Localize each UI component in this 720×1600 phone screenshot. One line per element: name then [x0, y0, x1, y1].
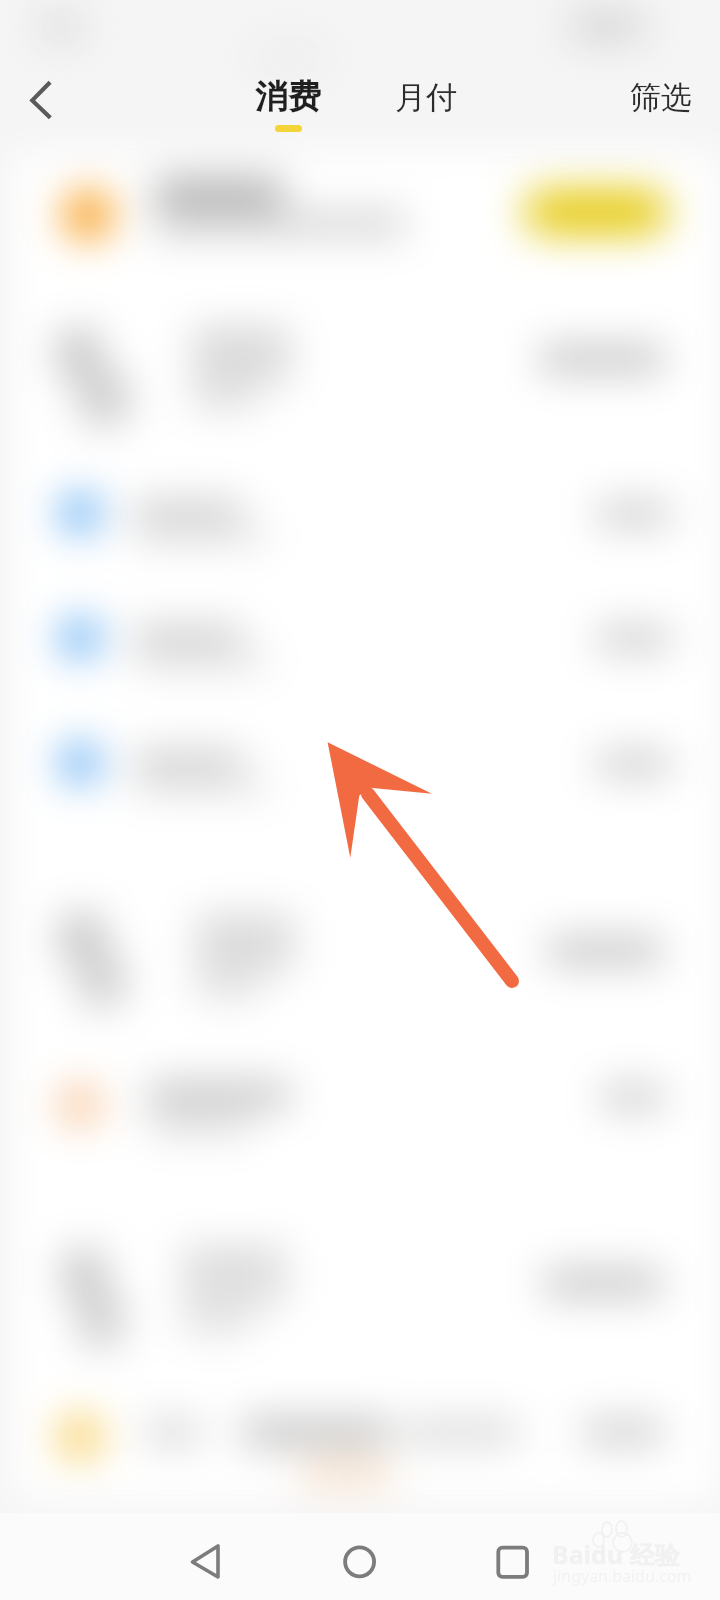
button[interactable]: 消费 — [236, 76, 340, 142]
button[interactable]: Back — [4, 64, 88, 136]
staticText: jingyan.baidu.com — [553, 1565, 692, 1587]
staticText: Baidu 经验 — [552, 1537, 680, 1571]
button[interactable]: Back — [166, 1521, 246, 1591]
staticText: 筛选 — [630, 78, 692, 117]
button[interactable]: Home — [320, 1521, 400, 1591]
staticText: 消费 — [255, 76, 321, 118]
button[interactable]: Recent apps — [473, 1521, 553, 1591]
button[interactable]: 月付 — [374, 78, 478, 138]
staticText: 月付 — [395, 78, 457, 117]
button[interactable]: 筛选 — [613, 78, 709, 138]
